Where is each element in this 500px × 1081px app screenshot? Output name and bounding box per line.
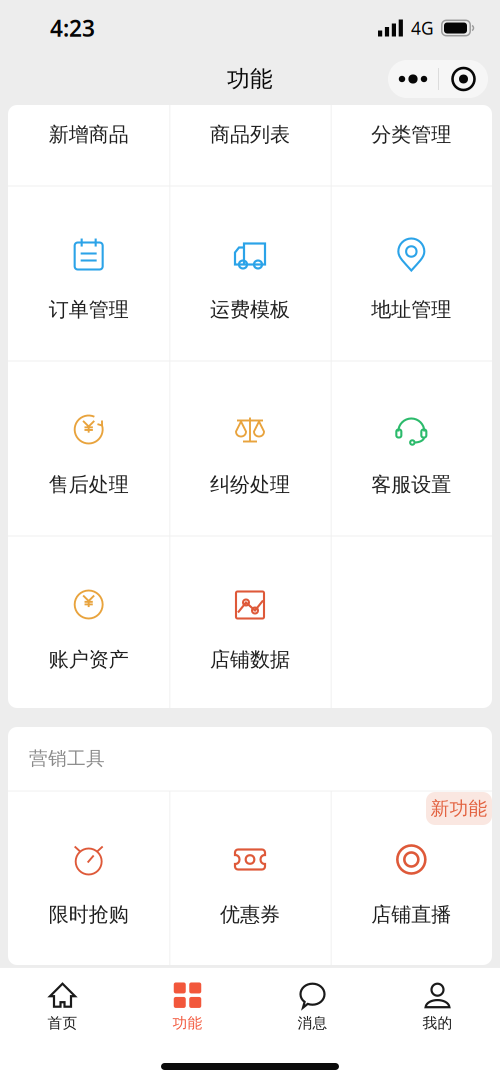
staticText: 店铺直播 [371, 902, 451, 927]
staticText: 优惠券 [220, 902, 280, 927]
staticText: 商品列表 [210, 122, 290, 147]
button[interactable]: 消息 [250, 968, 375, 1042]
staticText: 4G [411, 16, 434, 39]
button[interactable]: 账户资产 [8, 536, 169, 710]
button[interactable]: 功能 [125, 968, 250, 1042]
staticText: 店铺数据 [210, 647, 290, 672]
staticText: 营销工具 [29, 747, 105, 770]
staticText: 消息 [297, 1014, 327, 1032]
staticText: 我的 [422, 1014, 452, 1032]
button[interactable]: 店铺数据 [169, 536, 331, 710]
staticText: 4:23 [50, 13, 95, 43]
staticText: 售后处理 [49, 472, 129, 497]
staticText: 限时抢购 [49, 902, 129, 927]
button[interactable]: 分类管理 [331, 102, 492, 185]
button[interactable]: 地址管理 [331, 186, 492, 360]
button[interactable]: 优惠券 [169, 791, 331, 965]
button[interactable]: 商品列表 [169, 102, 331, 185]
button[interactable]: Close mini program [439, 60, 488, 98]
button[interactable]: 店铺直播 [331, 791, 492, 965]
staticText: 新增商品 [49, 122, 129, 147]
button[interactable]: 限时抢购 [8, 791, 169, 965]
staticText: 新功能 [430, 797, 487, 820]
button[interactable]: 新增商品 [8, 102, 169, 185]
button[interactable]: 首页 [0, 968, 125, 1042]
button[interactable]: 纠纷处理 [169, 361, 331, 535]
button[interactable]: 我的 [375, 968, 500, 1042]
staticText: 纠纷处理 [210, 472, 290, 497]
button[interactable]: 售后处理 [8, 361, 169, 535]
staticText: 首页 [47, 1014, 77, 1032]
staticText: 账户资产 [49, 647, 129, 672]
staticText: 分类管理 [371, 122, 451, 147]
staticText: 运费模板 [210, 297, 290, 322]
staticText: 地址管理 [371, 297, 451, 322]
staticText: 客服设置 [371, 472, 451, 497]
button[interactable]: 客服设置 [331, 361, 492, 535]
button[interactable]: More [388, 60, 438, 98]
button[interactable]: 订单管理 [8, 186, 169, 360]
staticText: 功能 [227, 65, 273, 93]
staticText: 订单管理 [49, 297, 129, 322]
staticText: 功能 [172, 1014, 202, 1032]
button[interactable]: 运费模板 [169, 186, 331, 360]
